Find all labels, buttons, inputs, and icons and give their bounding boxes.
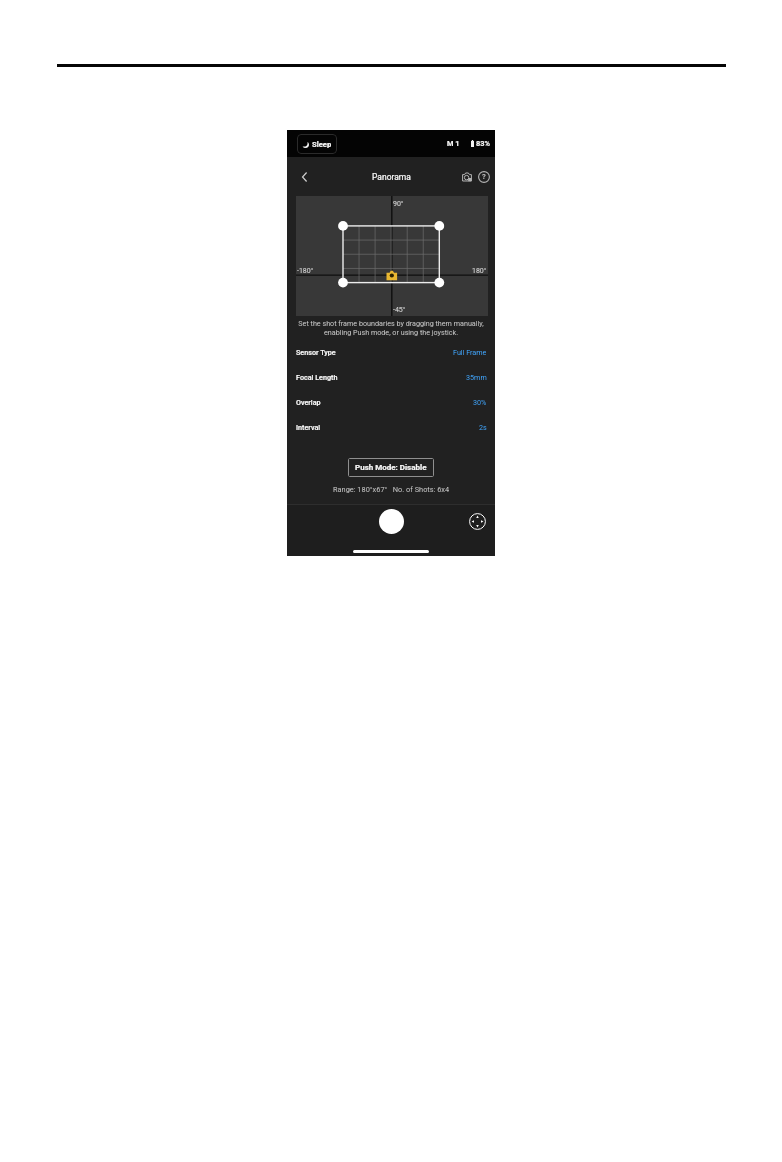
button[interactable]: Sleep	[297, 134, 337, 154]
staticText: Range: 180°x67° No. of Shots: 6x4	[333, 485, 450, 494]
staticText: 2s	[479, 423, 487, 431]
button[interactable]: Back	[294, 167, 314, 187]
staticText: 90°	[393, 200, 404, 208]
button[interactable]: Joystick	[466, 510, 488, 532]
staticText: Sensor Type	[296, 348, 336, 356]
button[interactable]: Interval	[287, 414, 495, 439]
staticText: Full Frame	[453, 348, 487, 356]
button[interactable]: Shutter	[379, 509, 404, 534]
staticText: Overlap	[296, 398, 321, 406]
staticText: ?	[482, 172, 486, 181]
button[interactable]: Help	[475, 168, 492, 185]
staticText: Panorama	[372, 172, 411, 182]
staticText: Focal Length	[296, 373, 338, 381]
button[interactable]: Overlap	[287, 389, 495, 414]
staticText: Set the shot frame boundaries by draggin…	[293, 319, 489, 337]
staticText: Sleep	[312, 140, 332, 149]
staticText: 30%	[473, 398, 487, 406]
staticText: 180°	[472, 267, 487, 275]
staticText: Push Mode: Disable	[355, 463, 427, 472]
button[interactable]: Push Mode: Disable	[348, 458, 434, 477]
button[interactable]: Camera settings	[458, 168, 475, 185]
staticText: M 1	[447, 139, 460, 148]
staticText: 83%	[476, 139, 490, 148]
staticText: 35mm	[466, 373, 487, 381]
button[interactable]: Sensor Type	[287, 339, 495, 364]
staticText: Interval	[296, 423, 321, 431]
button[interactable]: Focal Length	[287, 364, 495, 389]
staticText: -180°	[297, 267, 314, 275]
staticText: -45°	[393, 306, 406, 314]
